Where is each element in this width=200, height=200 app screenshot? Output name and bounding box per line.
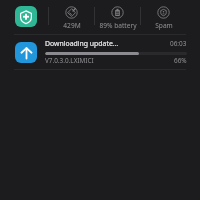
staticText: Spam xyxy=(155,21,173,30)
staticText: 66% xyxy=(174,56,187,65)
staticText: 429M xyxy=(63,21,81,30)
button[interactable]: 89% battery xyxy=(95,0,140,34)
button[interactable]: Spam xyxy=(141,0,186,34)
staticText: 06:03 xyxy=(170,39,187,48)
staticText: 89% battery xyxy=(99,21,137,30)
button[interactable]: Downloading update… xyxy=(0,35,200,69)
button[interactable]: Security scan xyxy=(0,0,48,34)
button[interactable]: 429M xyxy=(49,0,94,34)
staticText: Downloading update… xyxy=(45,39,119,48)
staticText: V7.0.3.0.LXIMICI xyxy=(45,56,94,65)
